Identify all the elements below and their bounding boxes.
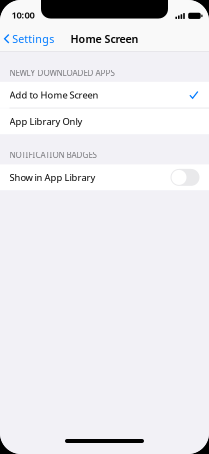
button[interactable]: Add to Home Screen	[0, 82, 209, 108]
staticText: App Library Only	[9, 115, 82, 128]
staticText: Settings	[12, 32, 54, 46]
staticText: NEWLY DOWNLOADED APPS	[9, 68, 114, 78]
button[interactable]: Show in App Library	[170, 169, 199, 186]
staticText: Add to Home Screen	[9, 89, 98, 101]
staticText: Show in App Library	[9, 171, 95, 184]
staticText: 10:00	[11, 9, 34, 21]
button[interactable]: App Library Only	[0, 108, 209, 134]
button[interactable]: Settings	[0, 26, 60, 51]
staticText: Home Screen	[70, 32, 138, 46]
staticText: NOTIFICATION BADGES	[9, 150, 96, 160]
